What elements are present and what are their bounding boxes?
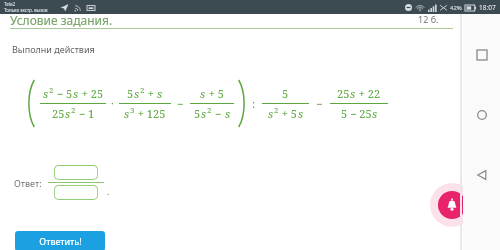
staticText: s (134, 86, 140, 101)
staticText: Только экстр. вызов (4, 7, 48, 13)
button[interactable]: Home (470, 103, 494, 127)
staticText: 5 (127, 86, 134, 101)
staticText: − (316, 96, 323, 111)
staticText: + 125 (135, 106, 166, 121)
staticText: + 5 (206, 86, 225, 101)
button[interactable]: Back (470, 163, 494, 187)
button[interactable]: Notifications (430, 183, 474, 227)
button[interactable] (54, 185, 98, 200)
staticText: · (111, 96, 114, 111)
staticText: 5 (282, 86, 289, 101)
staticText: − (212, 106, 225, 121)
staticText: 12 б. (418, 13, 439, 25)
staticText: s (298, 106, 304, 121)
staticText: s (43, 86, 49, 101)
staticText: s (65, 106, 71, 121)
button[interactable]: Recents (470, 43, 494, 67)
staticText: s (157, 86, 163, 101)
staticText: + 22 (356, 86, 381, 101)
button[interactable] (54, 165, 98, 180)
staticText: Выполни действия (12, 43, 95, 55)
staticText: s (201, 106, 207, 121)
staticText: s (200, 86, 206, 101)
staticText: + 25 (79, 86, 104, 101)
staticText: . (107, 185, 110, 197)
staticText: 2 (140, 85, 145, 96)
staticText: Ответить! (39, 235, 82, 247)
staticText: 25 (52, 106, 65, 121)
staticText: − 1 (76, 106, 95, 121)
staticText: Условие задания. (10, 12, 113, 28)
staticText: 2 (49, 85, 54, 96)
button[interactable]: Ответить! (15, 231, 105, 250)
staticText: 25 (337, 86, 350, 101)
staticText: + 5 (279, 106, 298, 121)
staticText: s (124, 106, 130, 121)
staticText: 42% (450, 4, 462, 12)
staticText: s (73, 86, 79, 101)
staticText: 5 (194, 106, 201, 121)
staticText: s (268, 106, 274, 121)
staticText: 2 (274, 105, 279, 116)
staticText: : (252, 96, 256, 111)
staticText: 3 (130, 105, 135, 116)
staticText: − (177, 96, 184, 111)
staticText: Tele2 (4, 1, 15, 7)
staticText: 18:07 (479, 3, 496, 12)
staticText: Ответ: (14, 177, 42, 189)
staticText: − 5 (54, 86, 73, 101)
staticText: 2 (207, 105, 212, 116)
staticText: + (145, 86, 157, 101)
staticText: s (350, 86, 356, 101)
staticText: s (225, 106, 231, 121)
staticText: 5 − 25 (341, 106, 372, 121)
staticText: 2 (71, 105, 76, 116)
staticText: s (372, 106, 378, 121)
